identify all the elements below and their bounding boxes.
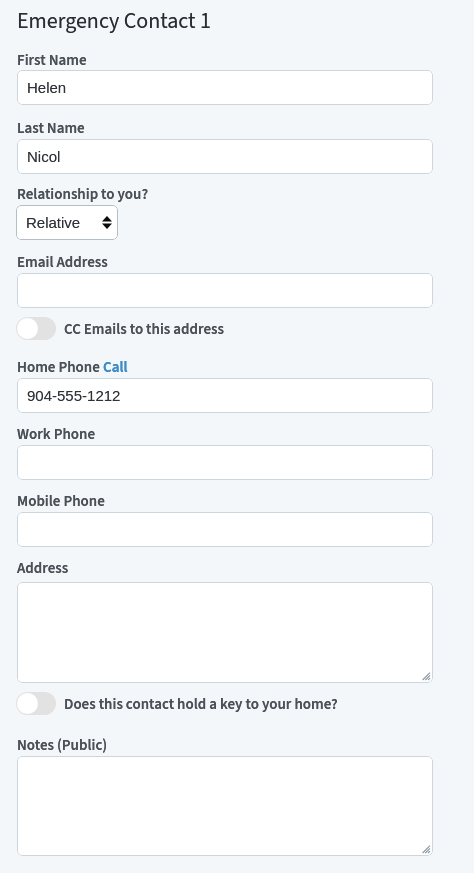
staticText: Nicol (27, 148, 61, 165)
staticText: Home Phone (17, 357, 100, 378)
staticText: Relationship to you? (17, 184, 149, 205)
staticText: 904-555-1212 (27, 387, 121, 404)
staticText: Helen (27, 79, 67, 96)
button[interactable]: Call (103, 357, 128, 378)
staticText: Helen (27, 79, 67, 96)
staticText: Mobile Phone (17, 491, 105, 512)
staticText: Email Address (17, 252, 108, 273)
button[interactable]: Nicol (17, 139, 433, 174)
button[interactable]: CC Emails to this address (16, 317, 56, 340)
staticText: Call (103, 357, 128, 378)
staticText: 904-555-1212 (27, 387, 121, 404)
staticText: Does this contact hold a key to your hom… (64, 694, 338, 715)
staticText: Nicol (27, 148, 61, 165)
staticText: Relationship to you? (17, 184, 149, 205)
staticText: Relative (26, 214, 81, 231)
staticText: Call (103, 357, 128, 378)
button[interactable]: Relative (16, 205, 118, 240)
staticText: Work Phone (17, 424, 96, 445)
staticText: Emergency Contact 1 (17, 5, 211, 36)
staticText: Home Phone (17, 357, 100, 378)
button[interactable] (17, 445, 433, 480)
staticText: Notes (Public) (17, 735, 108, 756)
staticText: CC Emails to this address (64, 319, 224, 340)
staticText: Does this contact hold a key to your hom… (64, 694, 338, 715)
staticText: Notes (Public) (17, 735, 108, 756)
staticText: First Name (17, 50, 87, 71)
button[interactable] (17, 756, 433, 856)
button[interactable] (17, 582, 433, 683)
button[interactable]: Helen (17, 70, 433, 105)
button[interactable] (17, 512, 433, 547)
staticText: Mobile Phone (17, 491, 105, 512)
staticText: Last Name (17, 118, 85, 139)
staticText: Last Name (17, 118, 85, 139)
button[interactable] (17, 273, 433, 308)
staticText: Address (17, 558, 69, 579)
button[interactable]: 904-555-1212 (17, 378, 433, 413)
button[interactable]: Contact holds key to home (16, 692, 56, 715)
staticText: First Name (17, 50, 87, 71)
staticText: Work Phone (17, 424, 96, 445)
staticText: CC Emails to this address (64, 319, 224, 340)
staticText: Email Address (17, 252, 108, 273)
staticText: Relative (26, 214, 81, 231)
staticText: Emergency Contact 1 (17, 5, 211, 36)
staticText: Address (17, 558, 69, 579)
